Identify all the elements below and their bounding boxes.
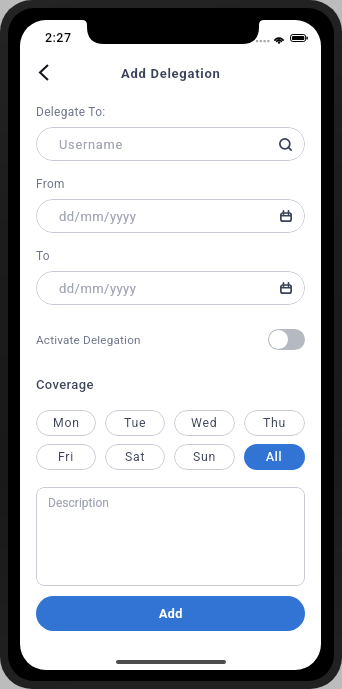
button[interactable]: Thu [244,410,305,436]
staticText: Tue [124,416,147,430]
staticText: Add [159,606,183,621]
staticText: Sun [193,450,216,464]
staticText: dd/mm/yyyy [59,209,280,224]
button[interactable]: Sun [174,444,235,470]
button[interactable]: dd/mm/yyyy [36,199,305,233]
staticText: Thu [263,416,286,430]
button[interactable]: Back [28,56,60,88]
staticText: All [266,450,283,464]
button[interactable]: dd/mm/yyyy [36,271,305,305]
button[interactable]: Fri [36,444,96,470]
staticText: dd/mm/yyyy [59,281,280,296]
staticText: Activate Delegation [36,333,268,347]
staticText: Fri [58,450,74,464]
staticText: Sat [125,450,146,464]
staticText: 2:27 [45,30,72,45]
staticText: Mon [53,416,80,430]
button[interactable]: Activate Delegation toggle [268,329,305,350]
staticText: From [36,177,65,191]
staticText: Coverage [36,377,94,392]
staticText: Wed [191,416,218,430]
staticText: Description [48,496,109,510]
staticText: To [36,249,50,263]
button[interactable]: Tue [105,410,165,436]
staticText: Username [59,137,279,152]
button[interactable]: Description [36,487,305,586]
button[interactable]: Wed [174,410,235,436]
staticText: Add Delegation [121,66,221,81]
button[interactable]: Username [36,127,305,161]
button[interactable]: Add [36,596,305,631]
button[interactable]: Mon [36,410,96,436]
staticText: Delegate To: [36,105,106,119]
button[interactable]: All [244,444,305,470]
button[interactable]: Sat [105,444,165,470]
